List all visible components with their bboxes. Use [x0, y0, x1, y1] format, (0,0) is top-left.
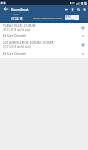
button[interactable]: Back: [0, 5, 11, 13]
button[interactable]: Details: [79, 32, 87, 40]
button[interactable]: Details: [79, 50, 87, 58]
button[interactable]: More options: [81, 5, 87, 13]
button[interactable]: Details: [79, 24, 87, 32]
button[interactable]: Details: [79, 41, 87, 49]
staticText: LOT ADRESLERI VE DURUM - KONTR: [3, 41, 54, 45]
button[interactable]: Search: [75, 5, 81, 13]
button[interactable]: Filter: [63, 5, 69, 13]
staticText: Ek Sure Dinamik: [3, 34, 26, 38]
button[interactable]: Notes: [69, 5, 75, 13]
staticText: 20.01.2018 tarihli kayit: [3, 28, 31, 32]
button[interactable]: Ek Sure Dinamik: [0, 49, 88, 58]
button[interactable]: LOT ADRESLERI VE DURUM - KONTR: [0, 40, 88, 49]
staticText: Kontrol islemlerinin listesi: [33, 16, 62, 19]
staticText: 01.01.2018 tarihli islem: [3, 45, 32, 49]
staticText: VERI KAYDET: [65, 15, 79, 20]
button[interactable]: Ek Sure Dinamik: [0, 32, 88, 40]
button[interactable]: PLANLI ISLER - DURUM: [0, 23, 88, 32]
staticText: PLANLI ISLER - DURUM: [3, 24, 36, 28]
staticText: Ek Sure Dinamik: [3, 52, 26, 56]
button[interactable]: VERI KAYDET: [65, 15, 79, 20]
staticText: 27.04.18: [11, 17, 23, 21]
staticText: Tarih: [13, 13, 19, 16]
staticText: Koordinat: [11, 7, 29, 12]
